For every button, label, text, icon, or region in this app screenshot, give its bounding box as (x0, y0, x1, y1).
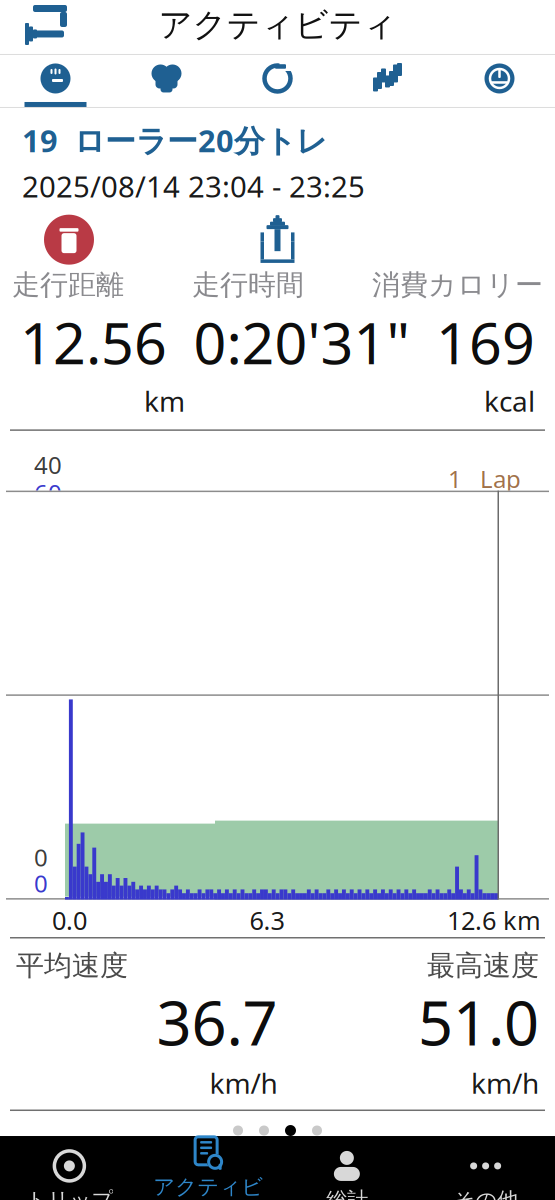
staticText: 6.3 (249, 903, 284, 937)
button[interactable]: アクティビティ (139, 1148, 278, 1200)
button[interactable]: トリップ (0, 1148, 139, 1200)
staticText: トリップ (25, 1187, 113, 1200)
staticText: 12.6 (447, 903, 496, 937)
staticText: 走行距離 (12, 268, 124, 302)
button[interactable]: パワー (333, 55, 444, 107)
staticText: 0 (34, 841, 48, 873)
staticText: 0.0 (52, 903, 87, 937)
button[interactable]: 削除 (14, 212, 124, 268)
staticText: 走行時間 (192, 268, 304, 302)
staticText: 169 (436, 304, 535, 380)
staticText: アクティビティ (158, 4, 396, 45)
staticText: 消費カロリー (372, 268, 543, 302)
staticText: 51.0 (418, 981, 539, 1062)
staticText: km (144, 382, 185, 419)
staticText: 60 (34, 477, 62, 509)
staticText: 40 (34, 449, 62, 481)
button[interactable]: 戻る (14, 0, 76, 51)
button[interactable]: ギア (444, 55, 555, 107)
button[interactable]: 共有 (222, 212, 332, 268)
staticText: 0 (34, 867, 48, 899)
staticText: kcal (484, 382, 535, 419)
staticText: 総計 (326, 1187, 368, 1200)
button[interactable]: 速度 (0, 55, 111, 107)
staticText: 19 ローラー20分トレ (22, 120, 327, 161)
button[interactable]: ケイデンス (222, 55, 333, 107)
staticText: km/h (209, 1064, 277, 1101)
button[interactable]: 総計 (277, 1148, 416, 1200)
button[interactable]: 心拍 (111, 55, 222, 107)
staticText: 36.7 (156, 981, 277, 1062)
staticText: 2025/08/14 23:04 - 23:25 (22, 167, 365, 206)
button[interactable]: その他 (416, 1148, 555, 1200)
staticText: km (496, 903, 541, 937)
staticText: Lap (480, 463, 521, 495)
staticText: 平均速度 (16, 948, 128, 983)
staticText: 0:20'31" (193, 304, 409, 380)
staticText: アクティビティ (153, 1174, 263, 1200)
staticText: その他 (453, 1187, 518, 1200)
staticText: km/h (471, 1064, 539, 1101)
staticText: 最高速度 (427, 948, 539, 983)
staticText: 12.56 (20, 304, 167, 380)
staticText: 1 (448, 463, 462, 495)
